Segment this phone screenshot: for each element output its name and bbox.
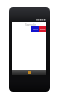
- button[interactable]: TEST: [31, 26, 39, 32]
- button[interactable]: STOP: [39, 26, 46, 32]
- staticText: Sample: [25, 23, 37, 27]
- staticText: STOP: [40, 28, 46, 31]
- button[interactable]: Recents: [35, 70, 46, 75]
- button[interactable]: Home: [24, 70, 35, 75]
- button[interactable]: Back: [12, 70, 24, 75]
- staticText: TEST: [33, 28, 38, 31]
